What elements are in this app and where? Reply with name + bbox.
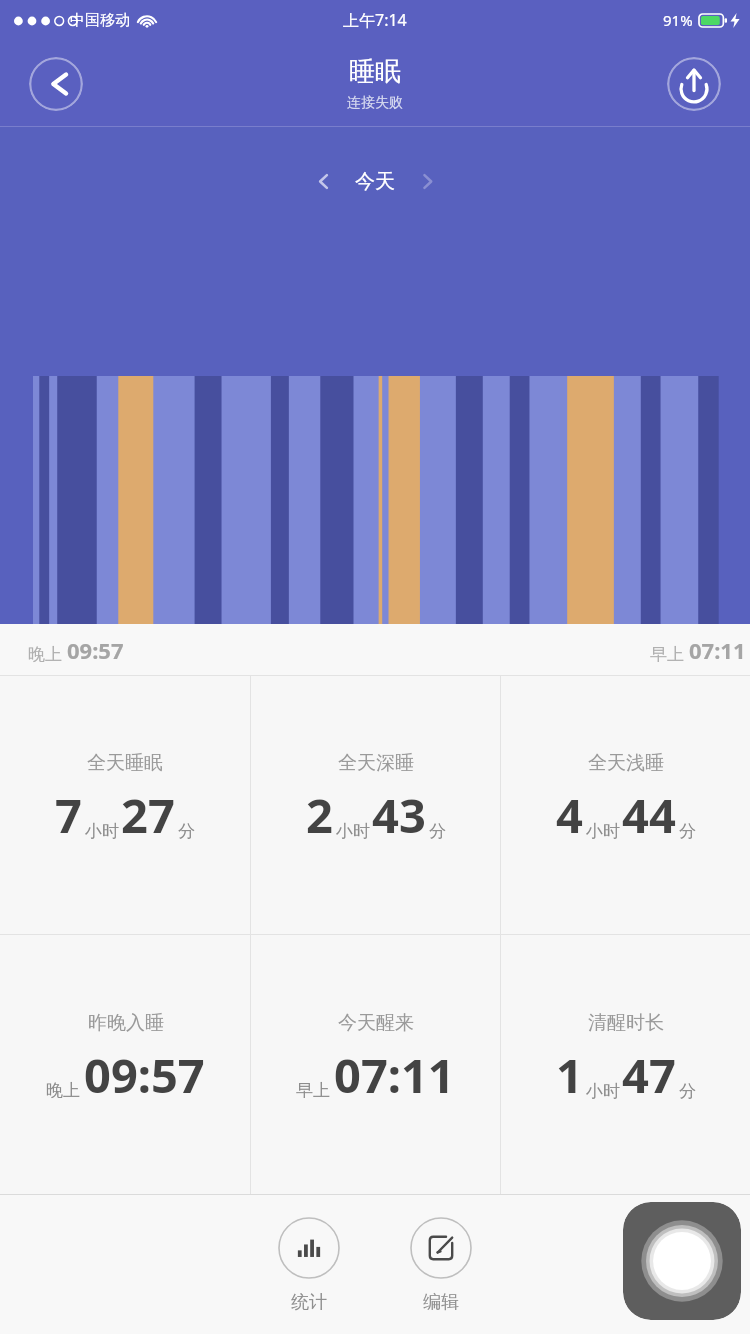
button[interactable]: 全天浅睡	[501, 676, 750, 934]
staticText: 全天深睡	[338, 751, 414, 775]
button[interactable]: 统计	[272, 1215, 346, 1316]
staticText: 小时	[85, 821, 119, 842]
button[interactable]: Next day	[406, 160, 448, 202]
staticText: 91%	[663, 10, 693, 30]
staticText: 43	[372, 783, 426, 847]
button[interactable]: Back	[29, 57, 83, 111]
staticText: 小时	[336, 821, 370, 842]
button[interactable]: 清醒时长	[501, 935, 750, 1194]
button[interactable]: Share	[667, 57, 721, 111]
button[interactable]: 昨晚入睡	[0, 935, 250, 1194]
staticText: 清醒时长	[588, 1011, 664, 1035]
staticText: 连接失败	[347, 94, 403, 112]
staticText: 分	[679, 1081, 696, 1102]
staticText: 4	[556, 783, 583, 847]
staticText: 编辑	[423, 1291, 459, 1314]
staticText: 全天睡眠	[87, 751, 163, 775]
staticText: 09:57	[67, 635, 124, 665]
staticText: 小时	[586, 1081, 620, 1102]
staticText: 统计	[291, 1291, 327, 1314]
staticText: 44	[622, 783, 676, 847]
button[interactable]: 编辑	[404, 1215, 478, 1316]
staticText: 分	[178, 821, 195, 842]
button[interactable]: 全天睡眠	[0, 676, 250, 934]
button[interactable]: 全天深睡	[251, 676, 500, 934]
staticText: 47	[622, 1043, 676, 1107]
staticText: 1	[556, 1043, 583, 1107]
button[interactable]: 今天醒来	[251, 935, 500, 1194]
staticText: 07:11	[334, 1043, 455, 1107]
staticText: 睡眠	[349, 55, 401, 88]
staticText: 小时	[586, 821, 620, 842]
staticText: 晚上	[28, 644, 62, 665]
staticText: 上午7:14	[343, 9, 407, 31]
staticText: 昨晚入睡	[88, 1011, 164, 1035]
staticText: 09:57	[84, 1043, 205, 1107]
staticText: 今天醒来	[338, 1011, 414, 1035]
button[interactable]: 今天	[344, 164, 406, 199]
staticText: 今天	[355, 169, 395, 194]
staticText: 全天浅睡	[588, 751, 664, 775]
staticText: 2	[306, 783, 333, 847]
button[interactable]: AssistiveTouch	[623, 1202, 741, 1320]
staticText: 27	[121, 783, 175, 847]
staticText: 早上	[650, 644, 684, 665]
button[interactable]: Previous day	[302, 160, 344, 202]
staticText: 07:11	[689, 635, 746, 665]
staticText: 分	[429, 821, 446, 842]
staticText: 中国移动	[70, 11, 130, 30]
staticText: 晚上	[46, 1080, 80, 1101]
staticText: 分	[679, 821, 696, 842]
staticText: 7	[55, 783, 82, 847]
staticText: 早上	[296, 1080, 330, 1101]
